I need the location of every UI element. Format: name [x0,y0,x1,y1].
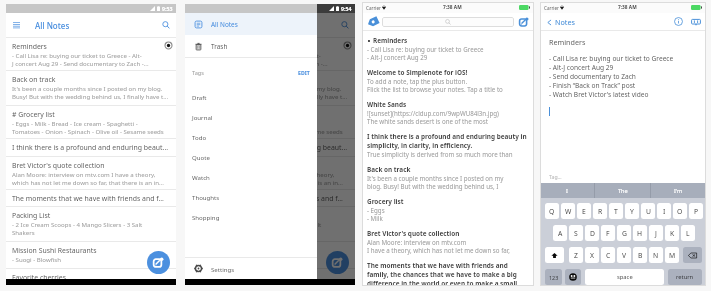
button[interactable]: B [633,247,647,263]
staticText: All Notes [214,20,249,31]
button[interactable]: space [585,269,664,285]
button[interactable]: K [665,225,679,241]
button[interactable]: Bret Victor's quote collection [185,157,355,189]
button[interactable]: Open navigation drawer [6,13,27,37]
button[interactable]: Todo [185,127,317,147]
button[interactable]: V [617,247,631,263]
button[interactable]: T [609,203,623,219]
button[interactable]: White Sands [362,93,534,125]
staticText: # Grocery list [191,110,234,119]
button[interactable]: U [641,203,655,219]
button[interactable]: Shift [545,247,564,263]
button[interactable]: I think there is a profound and enduring… [6,139,176,156]
staticText: Notes [555,17,575,27]
staticText: H [637,229,643,238]
staticText: family, the chances that we have to make… [367,270,517,279]
button[interactable]: Close navigation drawer [185,4,355,285]
staticText: All Notes [35,20,70,31]
button[interactable]: 123 [545,269,562,285]
button[interactable]: O [673,203,687,219]
button[interactable]: Draft [185,87,317,107]
button[interactable]: Trash [185,35,317,57]
button[interactable]: C [601,247,615,263]
button[interactable]: I [540,183,594,198]
button[interactable]: Favorite cherries [6,269,176,285]
button[interactable]: return [668,269,702,285]
button[interactable]: Bret Victor's quote collection [362,222,534,254]
button[interactable]: Reminders [6,38,176,70]
button[interactable]: New note [147,251,170,274]
button[interactable]: Mission Sushi Restaurants [6,242,176,268]
staticText: O [677,207,683,216]
staticText: U [646,207,651,216]
button[interactable]: # Grocery list [6,106,176,138]
staticText: B [638,251,643,260]
button[interactable]: Search [155,13,176,37]
button[interactable]: Backspace [683,247,702,263]
button[interactable]: L [681,225,695,241]
button[interactable]: Back on track [362,158,534,190]
button[interactable]: All Notes [185,13,317,35]
button[interactable]: D [585,225,599,241]
button[interactable]: X [585,247,599,263]
button[interactable]: Note information [672,15,685,28]
button[interactable]: P [689,203,703,219]
button[interactable]: Settings [185,258,317,279]
staticText: D [590,229,595,238]
button[interactable]: Reminders [185,38,355,70]
button[interactable]: New note [517,15,530,28]
button[interactable]: H [633,225,647,241]
button[interactable]: F [601,225,615,241]
button[interactable]: I'm [651,183,706,198]
button[interactable]: Bret Victor's quote collection [6,157,176,189]
button[interactable]: Notes [544,15,577,29]
button[interactable]: Back on track [6,71,176,105]
button[interactable]: Thoughts [185,187,317,207]
button[interactable]: The moments that we have with friends an… [6,190,176,206]
button[interactable]: Packing List [185,207,355,241]
button[interactable]: Share [689,15,702,28]
button[interactable]: Mission Sushi Restaurants [185,242,355,268]
button[interactable]: Tags [366,15,379,28]
button[interactable]: The moments that we have with friends an… [362,254,534,286]
button[interactable]: Q [545,203,559,219]
staticText: Todo [192,133,207,141]
button[interactable]: Search notes [382,17,514,27]
button[interactable]: The [595,183,650,198]
button[interactable]: Quote [185,147,317,167]
staticText: Watch [192,173,210,181]
button[interactable]: J [649,225,663,241]
button[interactable]: Search [334,13,355,37]
button[interactable]: Reminders [362,31,534,61]
button[interactable]: EDIT [298,69,310,76]
button[interactable]: W [561,203,575,219]
button[interactable]: Z [569,247,583,263]
button[interactable]: Shopping [185,207,317,227]
button[interactable]: S [569,225,583,241]
button[interactable]: Welcome to Simplenote for iOS! [362,61,534,93]
button[interactable]: Journal [185,107,317,127]
button[interactable]: Open navigation drawer [185,13,206,37]
button[interactable]: R [593,203,607,219]
button[interactable]: I think there is a profound and enduring… [362,125,534,158]
button[interactable]: A [553,225,567,241]
staticText: - 2 Ice Cream Scoops - 4 Mango Slicers -… [12,220,143,228]
button[interactable]: Back on track [185,71,355,105]
staticText: - Call Lisa re: buying our ticket to Gre… [549,54,674,63]
button[interactable]: G [617,225,631,241]
button[interactable]: M [665,247,679,263]
button[interactable]: I [657,203,671,219]
staticText: Tags [192,69,204,77]
button[interactable]: Favorite cherries [185,269,355,285]
button[interactable]: The moments that we have with friends an… [185,190,355,206]
button[interactable]: # Grocery list [185,106,355,138]
button[interactable]: Grocery list [362,190,534,222]
button[interactable]: Y [625,203,639,219]
button[interactable]: N [649,247,663,263]
button[interactable]: Watch [185,167,317,187]
button[interactable]: Packing List [6,207,176,241]
button[interactable]: I think there is a profound and enduring… [185,139,355,156]
button[interactable]: Emoji keyboard [565,269,581,285]
button[interactable]: E [577,203,591,219]
